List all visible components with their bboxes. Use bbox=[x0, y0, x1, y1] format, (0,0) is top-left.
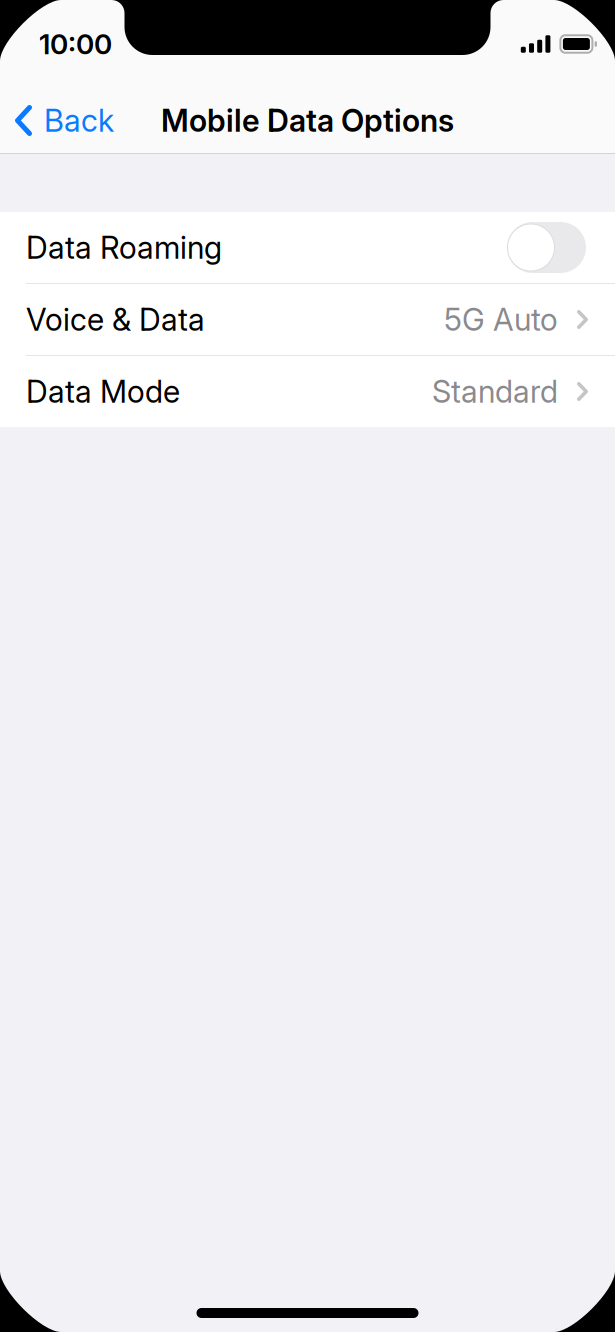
staticText: Standard bbox=[432, 373, 558, 410]
staticText: Mobile Data Options bbox=[161, 102, 454, 139]
staticText: Back bbox=[44, 102, 114, 139]
staticText: 10:00 bbox=[39, 27, 112, 61]
button[interactable]: Data Roaming bbox=[0, 212, 615, 283]
staticText: 5G Auto bbox=[444, 301, 558, 338]
staticText: Data Mode bbox=[26, 373, 180, 410]
button[interactable]: Data Mode bbox=[0, 356, 615, 427]
staticText: Data Roaming bbox=[26, 229, 222, 266]
button[interactable]: Back bbox=[0, 88, 126, 152]
button[interactable]: Voice & Data bbox=[0, 284, 615, 355]
staticText: Voice & Data bbox=[26, 301, 205, 338]
